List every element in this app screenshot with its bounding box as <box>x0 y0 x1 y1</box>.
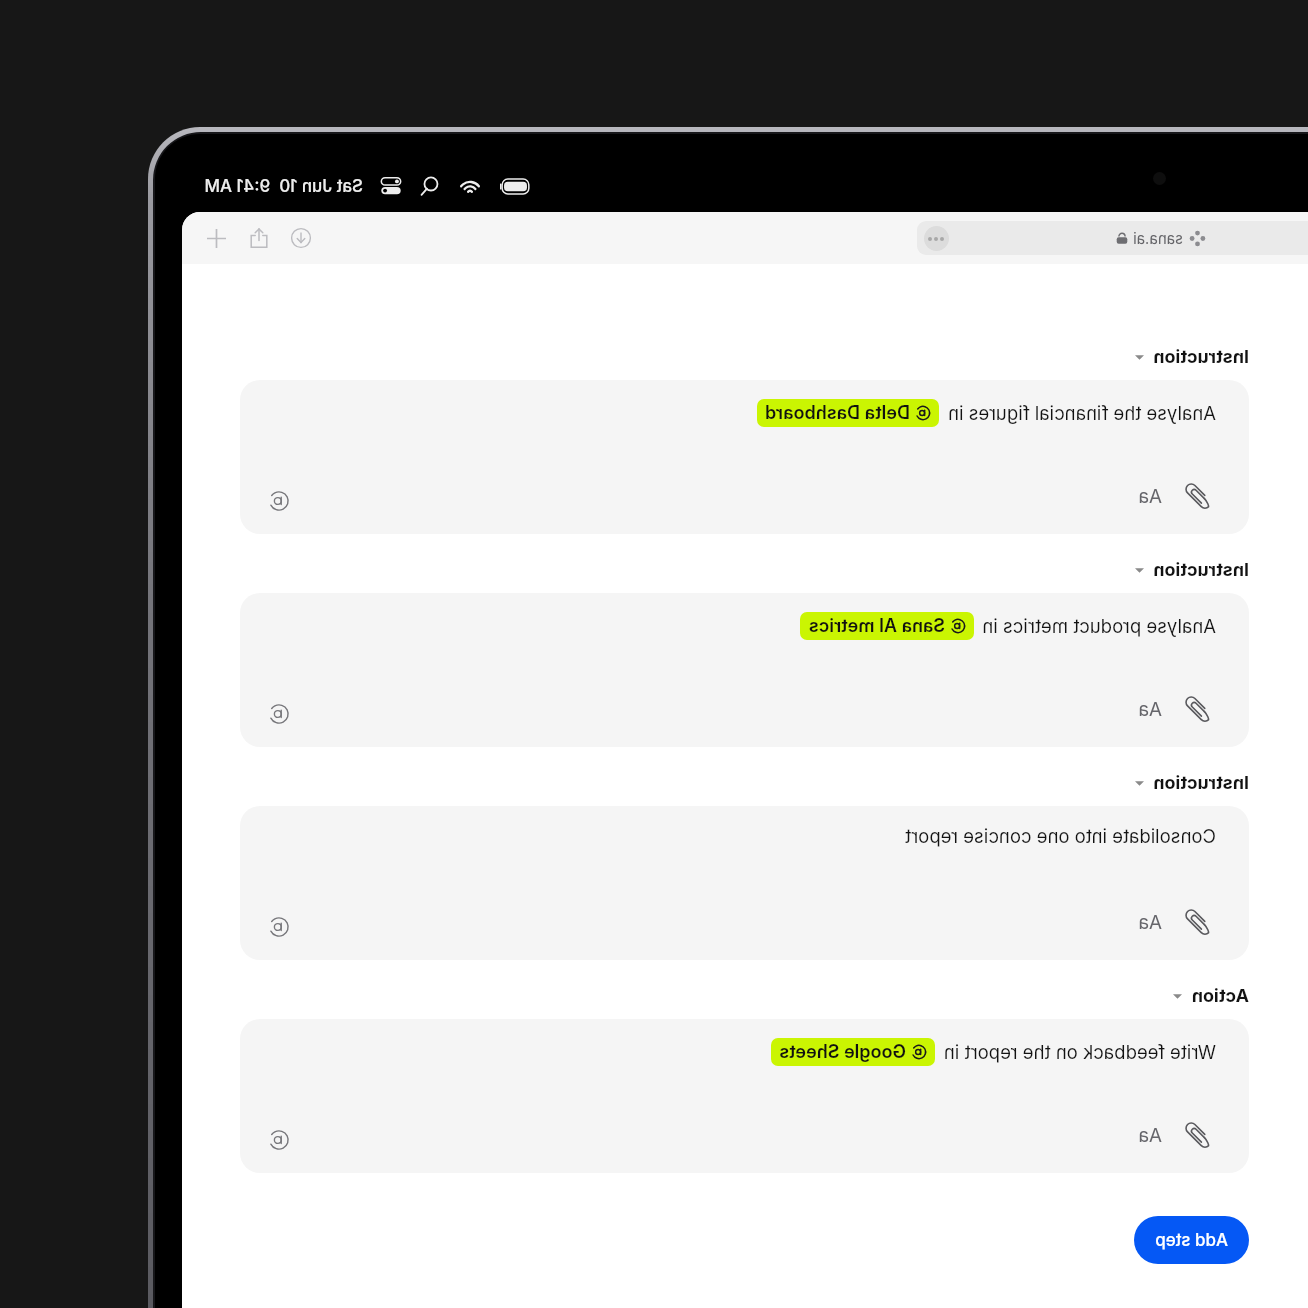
button[interactable]: Instruction <box>240 772 1249 794</box>
staticText: Analyse the financial figures in <box>942 402 1216 424</box>
staticText: Sat Jun 10 9:41 AM <box>204 176 363 197</box>
button[interactable]: Instruction <box>240 559 1249 581</box>
button[interactable]: Text formatting <box>1131 1116 1169 1154</box>
button[interactable]: Add step <box>1134 1216 1249 1264</box>
staticText: Delta Dashboard <box>765 402 910 424</box>
button[interactable]: Action <box>240 985 1249 1007</box>
button[interactable]: Mention <box>262 1123 296 1157</box>
button[interactable]: Analyse product metrics in <box>240 593 1249 747</box>
button[interactable]: Mention <box>262 697 296 731</box>
button[interactable]: Analyse the financial figures in <box>240 380 1249 534</box>
button[interactable]: New tab <box>196 217 238 259</box>
button[interactable]: Share <box>238 217 280 259</box>
button[interactable]: Text formatting <box>1131 690 1169 728</box>
staticText: Sana AI metrics <box>808 615 945 637</box>
staticText: Write feedback on the report in <box>938 1041 1216 1063</box>
staticText: Add step <box>1155 1230 1228 1251</box>
button[interactable]: Attach file <box>1179 690 1217 728</box>
staticText: Instruction <box>1153 772 1249 794</box>
button[interactable]: Mention <box>262 910 296 944</box>
staticText: Aa <box>1138 1124 1162 1147</box>
staticText: Instruction <box>1153 346 1249 368</box>
staticText: sana.ai <box>1132 229 1183 247</box>
staticText: Action <box>1191 985 1249 1007</box>
button[interactable]: Text formatting <box>1131 903 1169 941</box>
button[interactable]: Attach file <box>1179 903 1217 941</box>
button[interactable]: Text formatting <box>1131 477 1169 515</box>
staticText: Aa <box>1138 911 1162 934</box>
staticText: Consolidate into one concise report <box>904 825 1216 847</box>
staticText: Instruction <box>1153 559 1249 581</box>
button[interactable]: Mention <box>262 484 296 518</box>
button[interactable]: Extensions <box>1185 225 1211 251</box>
button[interactable]: Instruction <box>240 346 1249 368</box>
button[interactable]: Downloads <box>280 217 322 259</box>
button[interactable]: Attach file <box>1179 1116 1217 1154</box>
button[interactable]: sana.ai <box>917 221 1308 255</box>
staticText: Google Sheets <box>779 1041 906 1063</box>
staticText: Analyse product metrics in <box>977 615 1216 637</box>
button[interactable]: Attach file <box>1179 477 1217 515</box>
button[interactable]: Consolidate into one concise report <box>240 806 1249 960</box>
staticText: Aa <box>1138 485 1162 508</box>
button[interactable]: Page settings <box>924 226 949 251</box>
button[interactable]: Write feedback on the report in <box>240 1019 1249 1173</box>
staticText: Aa <box>1138 698 1162 721</box>
